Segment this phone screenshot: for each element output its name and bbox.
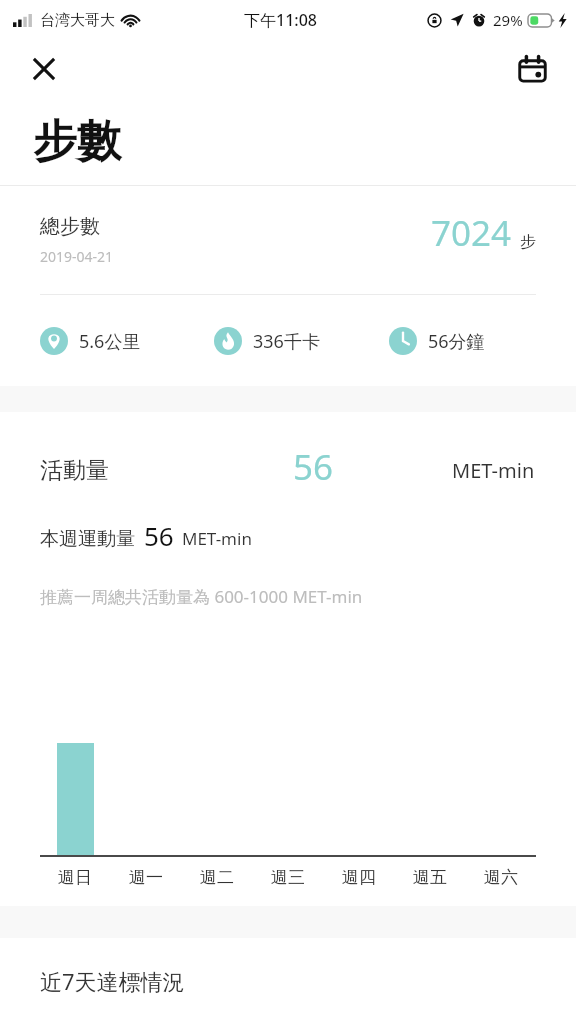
staticText: 週二 [200, 867, 234, 888]
staticText: 2019-04-21 [40, 247, 114, 266]
staticText: 週五 [413, 867, 447, 888]
staticText: 週日 [58, 867, 92, 888]
button[interactable]: Close [20, 45, 68, 93]
button[interactable]: 336千卡 [202, 327, 377, 355]
staticText: 步數 [33, 114, 121, 169]
button[interactable]: 56分鐘 [377, 327, 552, 355]
staticText: 下午11:08 [244, 9, 317, 31]
staticText: 7024 [431, 209, 512, 257]
staticText: 56 [293, 443, 334, 491]
staticText: MET-min [452, 457, 535, 484]
staticText: 週三 [271, 867, 305, 888]
staticText: 336千卡 [253, 329, 320, 354]
staticText: 步 [520, 232, 536, 252]
staticText: 週一 [129, 867, 163, 888]
staticText: 29% [493, 10, 523, 30]
staticText: 週六 [484, 867, 518, 888]
staticText: MET-min [182, 527, 252, 550]
button[interactable]: Calendar [508, 45, 556, 93]
staticText: 5.6公里 [79, 329, 141, 354]
staticText: 本週運動量 [40, 527, 135, 551]
staticText: 台湾大哥大 [40, 11, 115, 30]
staticText: 總步數 [40, 214, 100, 239]
staticText: 推薦一周總共活動量為 600-1000 MET-min [40, 585, 363, 608]
staticText: 週四 [342, 867, 376, 888]
staticText: 56 [144, 518, 174, 553]
button[interactable]: 5.6公里 [28, 327, 202, 355]
staticText: 56分鐘 [428, 329, 485, 354]
staticText: 活動量 [40, 456, 109, 485]
staticText: 近7天達標情況 [40, 966, 185, 996]
